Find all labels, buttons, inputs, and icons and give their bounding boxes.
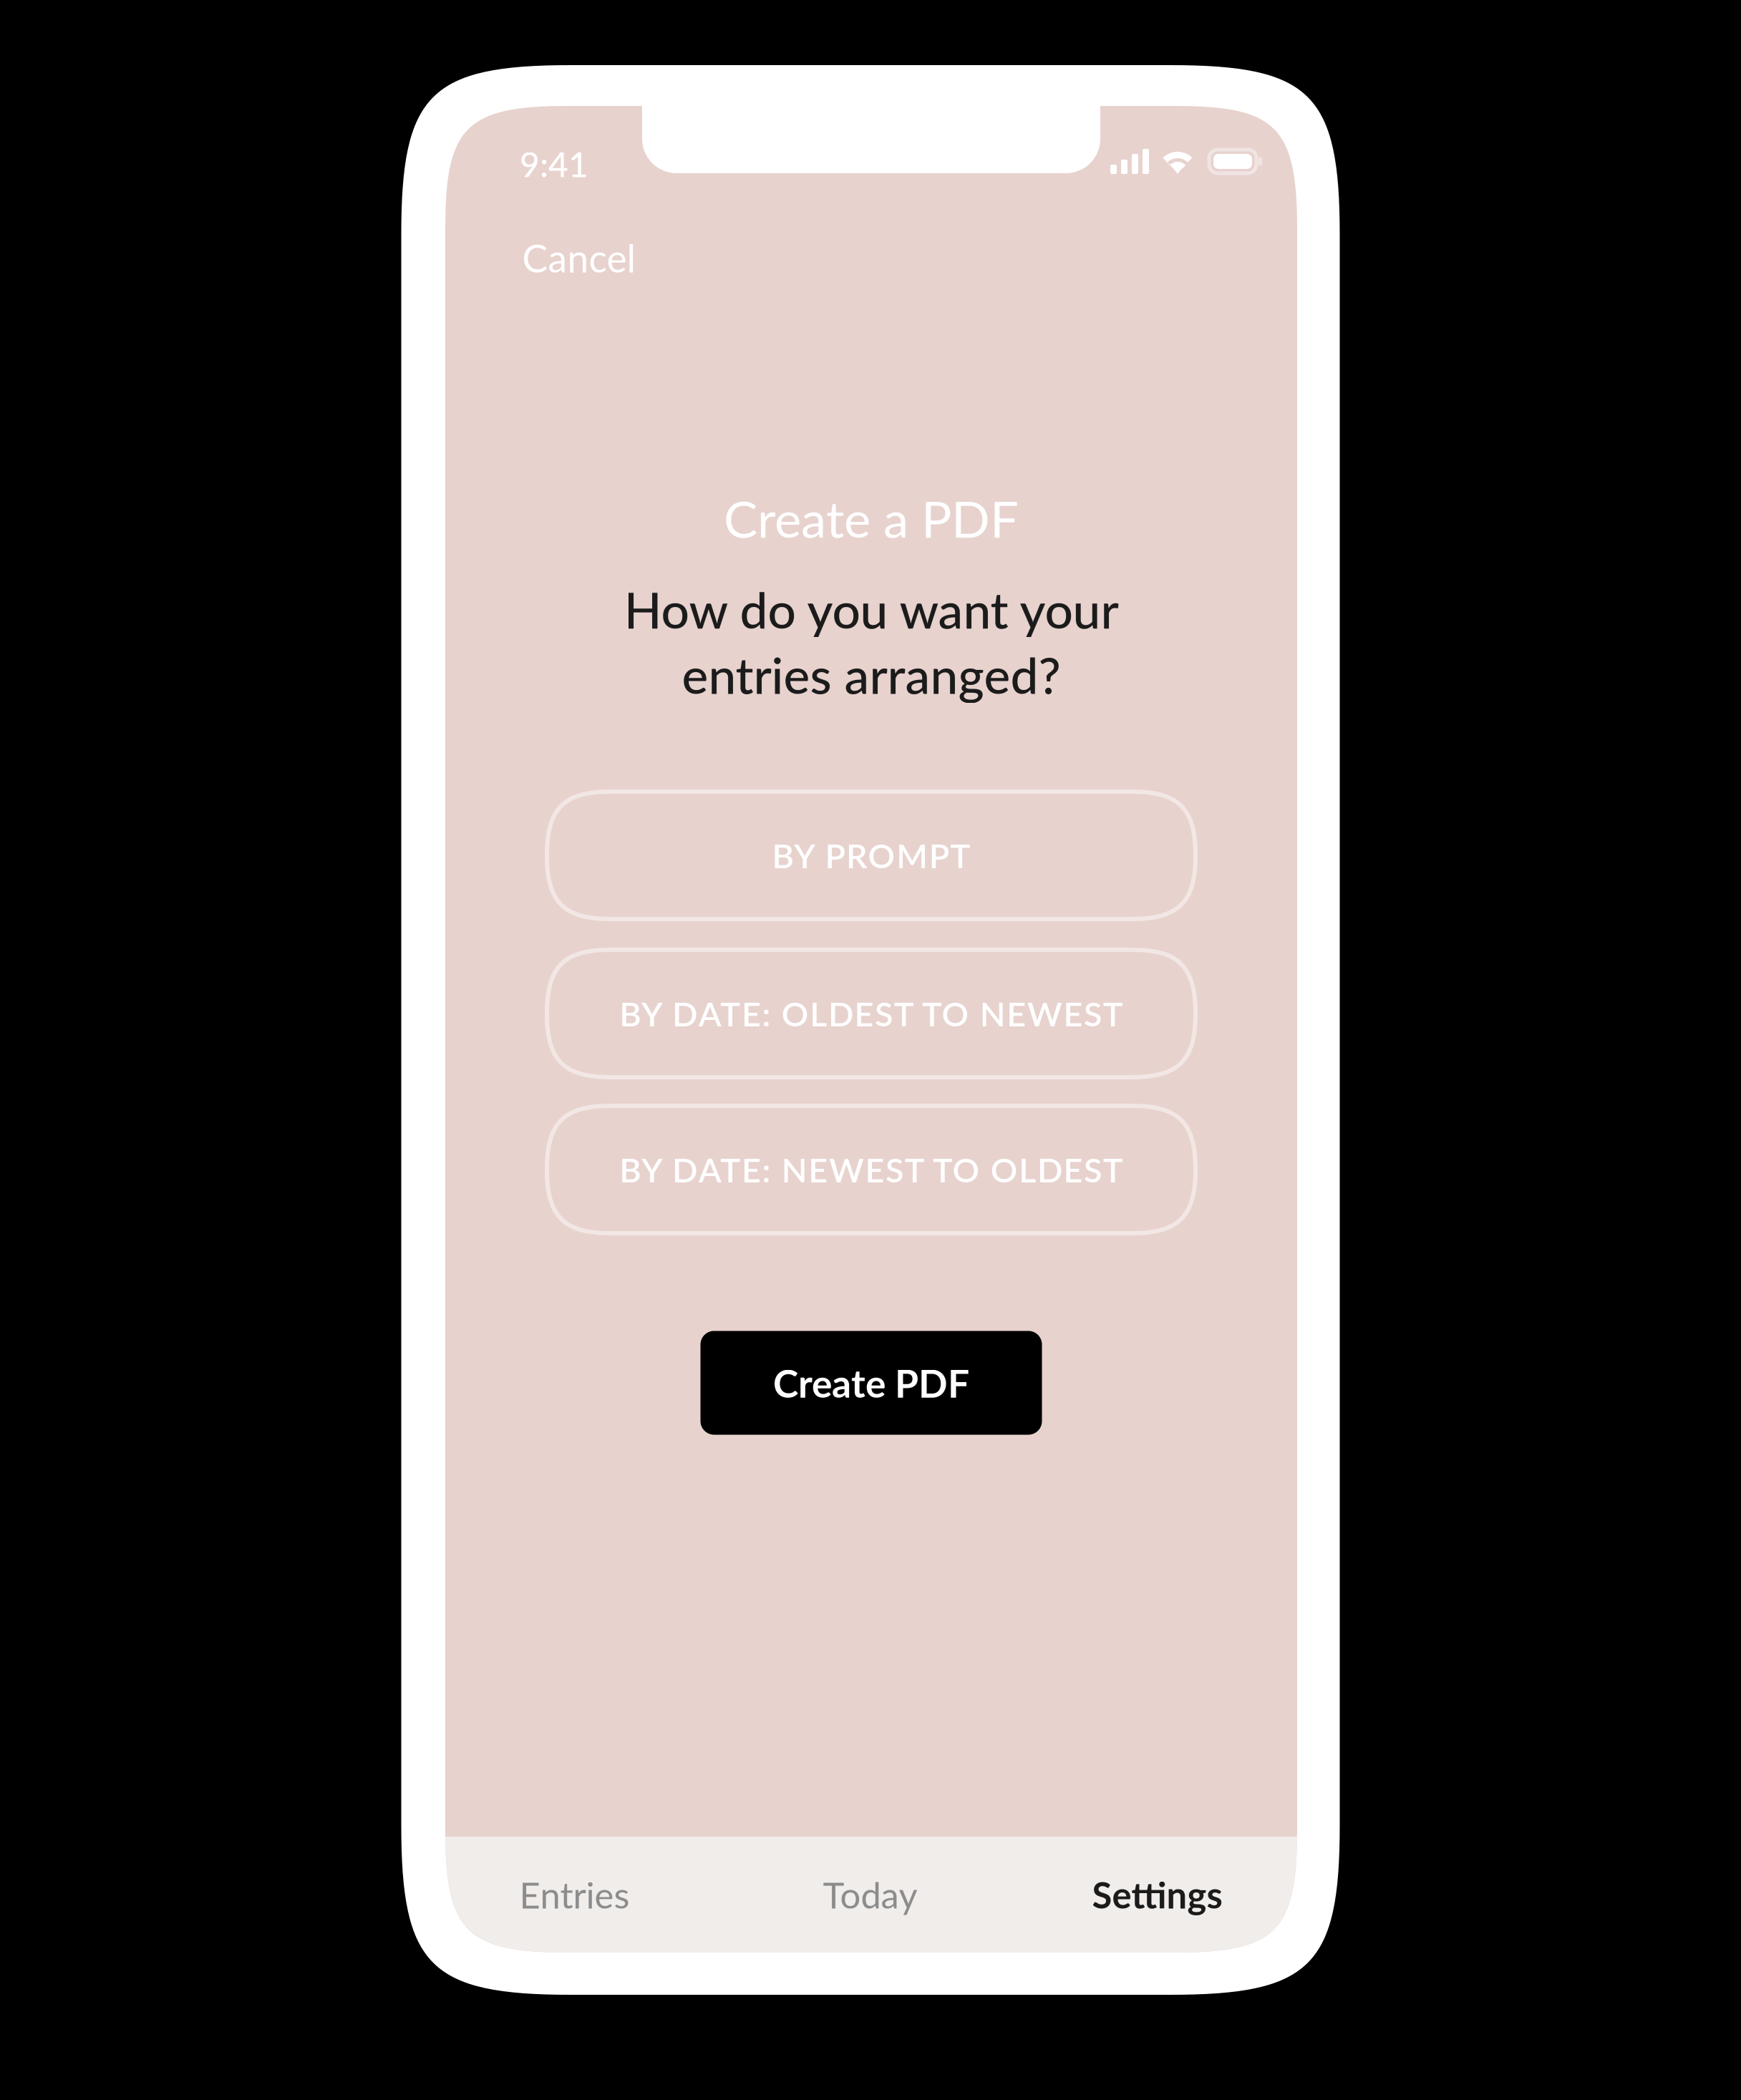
button[interactable]: Settings xyxy=(1037,1837,1278,1953)
button[interactable]: BY PROMPT xyxy=(547,792,1196,919)
staticText: BY PROMPT xyxy=(772,835,970,875)
button[interactable]: Today xyxy=(704,1837,1037,1953)
staticText: Cancel xyxy=(522,235,636,281)
staticText: Create a PDF xyxy=(724,488,1019,549)
staticText: BY DATE: OLDEST TO NEWEST xyxy=(619,993,1123,1034)
staticText: Settings xyxy=(1092,1873,1222,1916)
button[interactable]: Entries xyxy=(445,1837,704,1953)
button[interactable]: BY DATE: OLDEST TO NEWEST xyxy=(547,950,1196,1077)
staticText: Create PDF xyxy=(773,1360,969,1406)
staticText: How do you want your xyxy=(624,580,1119,639)
staticText: 9:41 xyxy=(520,143,588,185)
button[interactable]: BY DATE: NEWEST TO OLDEST xyxy=(547,1106,1196,1233)
staticText: Entries xyxy=(519,1873,630,1916)
staticText: BY DATE: NEWEST TO OLDEST xyxy=(619,1149,1123,1190)
staticText: entries arranged? xyxy=(682,645,1061,704)
staticText: Today xyxy=(823,1873,917,1916)
button[interactable]: Cancel xyxy=(506,220,652,295)
button[interactable]: Create PDF xyxy=(700,1331,1042,1435)
